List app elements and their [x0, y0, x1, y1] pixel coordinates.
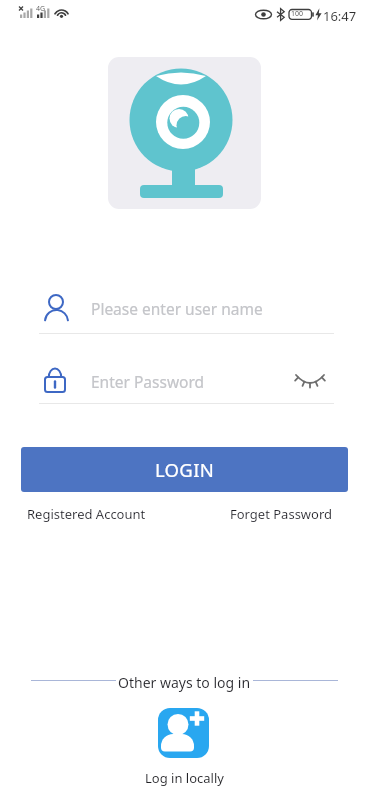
staticText: Please enter user name	[91, 298, 263, 319]
staticText: Forget Password	[230, 505, 333, 523]
staticText: Other ways to log in	[118, 673, 251, 692]
staticText: 4G	[36, 4, 46, 14]
staticText: LOGIN	[155, 457, 215, 482]
button[interactable]: Enter Password	[30, 360, 340, 400]
staticText: Log in locally	[145, 769, 224, 787]
button[interactable]: Forget Password	[230, 505, 333, 523]
staticText: Registered Account	[27, 505, 146, 523]
button[interactable]	[158, 708, 209, 758]
button[interactable]: LOGIN	[21, 447, 348, 492]
staticText: Enter Password	[91, 371, 205, 392]
button[interactable]: Please enter user name	[30, 288, 340, 328]
button[interactable]	[293, 370, 327, 390]
staticText: 100	[291, 9, 304, 19]
button[interactable]: Registered Account	[27, 505, 146, 523]
staticText: 16:47	[323, 7, 357, 25]
button[interactable]: Log in locally	[145, 769, 224, 787]
